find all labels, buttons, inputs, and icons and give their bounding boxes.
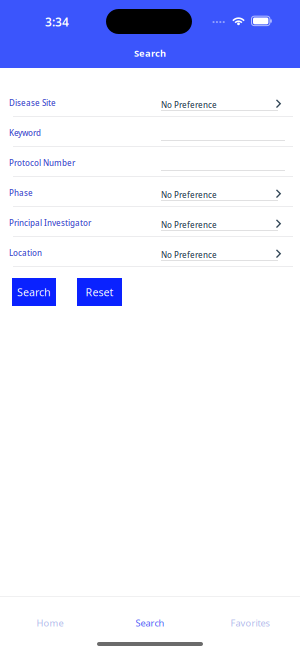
button[interactable]: Phase <box>0 177 300 207</box>
button[interactable]: Home <box>0 597 100 649</box>
staticText: Search <box>135 617 164 629</box>
staticText: Location <box>9 247 42 258</box>
staticText: Protocol Number <box>9 157 75 168</box>
staticText: No Preference <box>161 100 217 110</box>
button[interactable]: Favorites <box>200 597 300 649</box>
staticText: Search <box>134 47 166 59</box>
button[interactable]: Disease Site <box>0 87 300 117</box>
button[interactable]: Principal Investigator <box>0 207 300 237</box>
staticText: No Preference <box>161 220 217 230</box>
staticText: 3:34 <box>45 14 69 30</box>
button[interactable]: Reset <box>77 278 122 306</box>
staticText: Favorites <box>230 617 269 629</box>
staticText: Phase <box>9 187 33 198</box>
staticText: Reset <box>85 285 113 299</box>
button[interactable]: Search <box>12 278 56 306</box>
button[interactable]: Search <box>100 597 200 649</box>
staticText: Keyword <box>9 127 41 138</box>
staticText: Disease Site <box>9 97 56 108</box>
staticText: Search <box>17 285 51 299</box>
staticText: Principal Investigator <box>9 217 91 228</box>
staticText: No Preference <box>161 190 217 200</box>
staticText: Home <box>36 617 63 629</box>
button[interactable]: Location <box>0 237 300 267</box>
staticText: No Preference <box>161 250 217 260</box>
